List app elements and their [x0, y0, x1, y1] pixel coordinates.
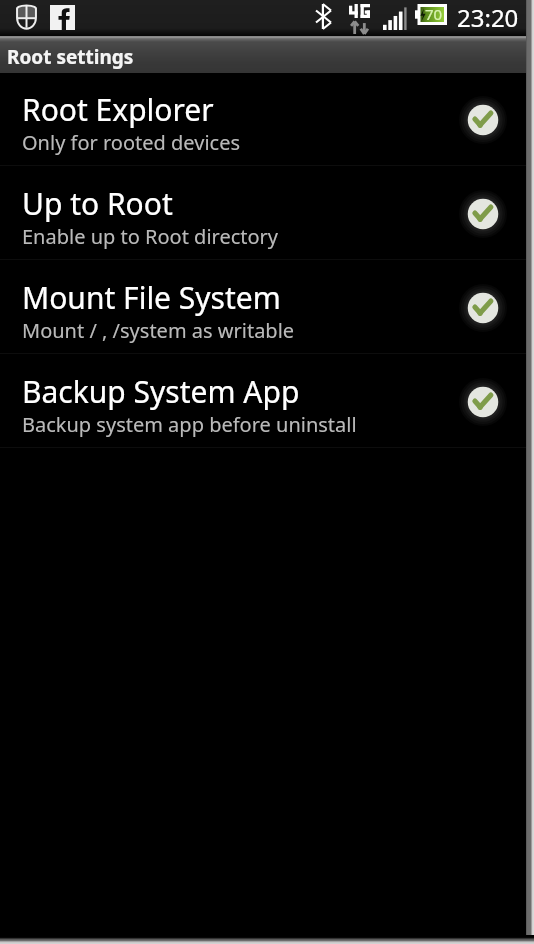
button[interactable]: Toggle Backup System App — [459, 378, 507, 426]
staticText: Mount / , /system as writable — [22, 317, 295, 344]
other: Battery 70 percent — [415, 4, 447, 25]
button[interactable]: Toggle Up to Root — [459, 190, 507, 238]
button[interactable]: Up to Root — [0, 167, 534, 261]
staticText: Backup system app before uninstall — [22, 411, 357, 438]
button[interactable]: Root Explorer — [0, 73, 534, 167]
button[interactable]: Toggle Root Explorer — [459, 96, 507, 144]
staticText: Root settings — [7, 44, 134, 70]
staticText: 70 — [425, 4, 443, 24]
other: Security — [16, 5, 37, 29]
staticText: Up to Root — [22, 183, 173, 224]
staticText: Backup System App — [22, 371, 300, 412]
other: Bluetooth — [316, 4, 331, 29]
staticText: Root Explorer — [22, 89, 214, 130]
staticText: 23:20 — [457, 1, 519, 34]
button[interactable]: Mount File System — [0, 261, 534, 355]
button[interactable]: Backup System App — [0, 355, 534, 449]
staticText: Mount File System — [22, 277, 281, 318]
button[interactable]: Toggle Mount File System — [459, 284, 507, 332]
staticText: Enable up to Root directory — [22, 223, 279, 250]
staticText: Only for rooted devices — [22, 129, 240, 156]
other: Signal strength — [383, 4, 407, 30]
